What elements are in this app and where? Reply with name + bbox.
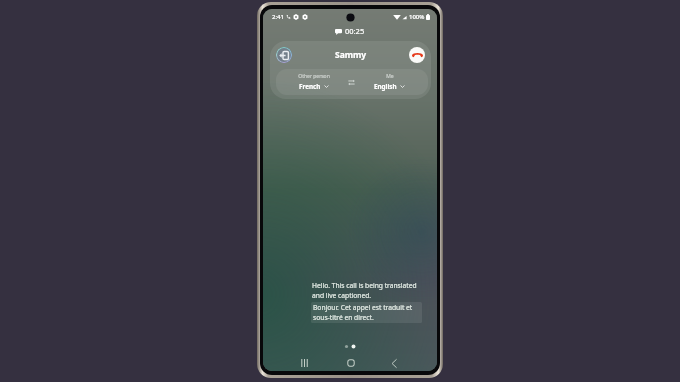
button[interactable]: Other person	[276, 73, 351, 91]
button[interactable]: Swap languages	[345, 69, 358, 95]
staticText: Bonjour. Cet appel est traduit et sous-t…	[313, 303, 413, 322]
button[interactable]: Minimize call	[276, 47, 292, 63]
staticText: 100%	[409, 13, 425, 21]
staticText: Sammy	[335, 49, 367, 61]
button[interactable]: Me	[351, 73, 428, 91]
staticText: Other person	[298, 73, 330, 80]
button[interactable]: Recents	[285, 355, 323, 371]
staticText: French	[299, 82, 321, 91]
staticText: 00:25	[345, 26, 365, 36]
staticText: Hello. This call is being translated and…	[312, 281, 417, 300]
button[interactable]: Home	[332, 355, 370, 371]
staticText: 2:41	[272, 13, 284, 21]
button[interactable]: End call	[409, 47, 425, 63]
staticText: Me	[386, 73, 394, 80]
staticText: English	[374, 82, 397, 91]
button[interactable]: Back	[375, 355, 413, 371]
